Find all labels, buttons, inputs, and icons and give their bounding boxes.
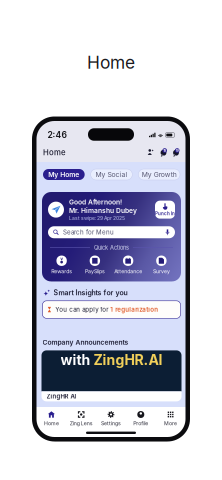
staticText: My Growth [142,170,177,179]
button[interactable]: Profile [126,411,156,426]
button[interactable]: Zing Lens [66,411,96,426]
staticText: More [164,420,177,426]
staticText: ZingHR AI [46,393,76,400]
staticText: PaySlips [85,268,105,274]
button[interactable]: My Social [91,169,132,180]
button[interactable]: Messages [160,148,167,157]
staticText: You can apply for [51,306,110,313]
staticText: Company Announcements [42,338,128,346]
button[interactable]: My Home [43,169,85,180]
button[interactable]: My Growth [138,169,180,180]
staticText: Zing Lens [70,420,93,426]
staticText: Rewards [51,268,72,274]
button[interactable]: Survey [145,255,178,274]
staticText: My Home [48,170,79,179]
button[interactable]: Settings [96,411,126,426]
staticText: with [60,351,93,368]
staticText: Home [43,148,66,157]
staticText: My Social [95,170,127,179]
button[interactable]: More [156,411,185,426]
staticText: Quick Actions [94,244,129,251]
staticText: Good Afternoon! [69,198,122,206]
staticText: 1 regularization [110,306,158,313]
button[interactable]: Rewards [45,255,78,274]
button[interactable]: Home [36,411,66,426]
staticText: Home [44,420,59,426]
staticText: Profile [133,420,148,426]
staticText: ZingHR.AI [93,351,162,368]
staticText: Mr. Himanshu Dubey [69,207,137,215]
button[interactable]: AI assistant [146,149,154,156]
button[interactable]: PaySlips [78,255,111,274]
staticText: Attendance [114,268,142,274]
staticText: 19 [176,149,179,152]
staticText: Home [87,52,135,73]
button[interactable]: Punch In [155,201,175,219]
button[interactable]: Attendance [111,255,145,274]
staticText: Last swipe: 29 Apr 2025 [69,215,125,221]
staticText: Smart Insights for you [53,288,127,297]
button[interactable]: Messages [172,148,179,157]
staticText: 19 [163,149,166,152]
staticText: Search for Menu [59,229,114,236]
staticText: 2:46 [47,130,66,140]
staticText: Punch In [155,211,175,216]
staticText: Settings [101,420,121,426]
staticText: Survey [153,268,170,274]
